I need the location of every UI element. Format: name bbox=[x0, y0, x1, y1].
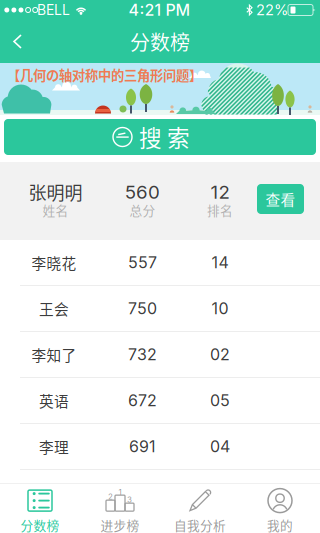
staticText: 2 bbox=[108, 492, 113, 501]
staticText: 560 bbox=[125, 181, 160, 203]
staticText: 分数榜 bbox=[20, 516, 59, 533]
button[interactable]: 周花花 bbox=[0, 470, 320, 516]
staticText: 557 bbox=[128, 253, 157, 272]
staticText: 李理 bbox=[39, 436, 69, 457]
staticText: 姓名 bbox=[42, 201, 68, 219]
button[interactable]: 我的 bbox=[240, 484, 320, 533]
staticText: 【几何の轴对称中的三角形问题】 bbox=[7, 65, 202, 84]
staticText: 总分 bbox=[129, 201, 155, 219]
staticText: 14 bbox=[211, 253, 228, 272]
staticText: 05 bbox=[210, 391, 230, 410]
staticText: 10 bbox=[211, 299, 228, 318]
staticText: 进步榜 bbox=[100, 516, 139, 533]
staticText: 王会 bbox=[39, 298, 69, 319]
staticText: 查看 bbox=[265, 188, 295, 210]
staticText: 李知了 bbox=[31, 344, 76, 365]
staticText: 4:21 PM bbox=[128, 0, 190, 20]
staticText: 02 bbox=[210, 345, 230, 364]
button[interactable]: 自我分析 bbox=[160, 484, 240, 533]
button[interactable]: 李理 bbox=[0, 424, 320, 470]
staticText: 691 bbox=[129, 437, 156, 456]
staticText: 690 bbox=[127, 483, 157, 502]
button[interactable]: 王会 bbox=[0, 286, 320, 332]
staticText: 22% bbox=[256, 1, 288, 19]
button[interactable]: 李晓花 bbox=[0, 240, 320, 286]
staticText: 自我分析 bbox=[174, 516, 226, 533]
staticText: 1 bbox=[118, 487, 121, 497]
staticText: 732 bbox=[128, 345, 157, 364]
staticText: 12 bbox=[210, 181, 229, 203]
staticText: BELL bbox=[37, 1, 70, 18]
staticText: 分数榜 bbox=[130, 27, 190, 56]
button[interactable]: 查看 bbox=[257, 184, 304, 214]
staticText: 英语 bbox=[39, 390, 69, 411]
staticText: 李晓花 bbox=[31, 252, 76, 273]
button[interactable]: 李知了 bbox=[0, 332, 320, 378]
staticText: 我的 bbox=[267, 516, 293, 533]
button[interactable]: 2 bbox=[80, 484, 160, 533]
button[interactable]: 英语 bbox=[0, 378, 320, 424]
staticText: 搜 索 bbox=[139, 120, 190, 153]
button[interactable]: Back bbox=[0, 22, 36, 61]
staticText: 18 bbox=[211, 483, 228, 502]
staticText: 672 bbox=[128, 391, 157, 410]
staticText: 04 bbox=[210, 437, 230, 456]
staticText: 750 bbox=[128, 299, 157, 318]
staticText: 3 bbox=[127, 495, 132, 504]
staticText: 张明明 bbox=[28, 179, 82, 205]
button[interactable]: 分数榜 bbox=[0, 484, 80, 533]
staticText: 周花花 bbox=[31, 482, 76, 503]
button[interactable]: 搜 索 bbox=[4, 119, 316, 155]
staticText: 排名 bbox=[207, 201, 233, 219]
